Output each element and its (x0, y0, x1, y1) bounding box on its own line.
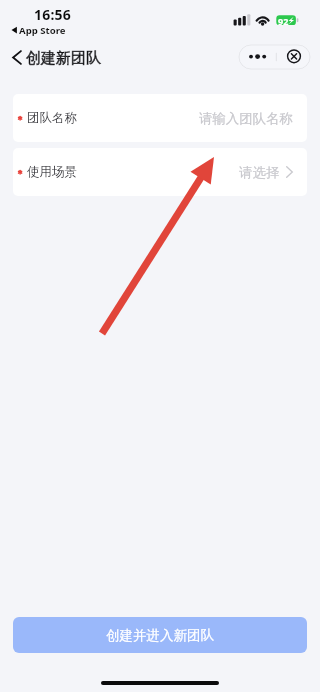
button[interactable]: 创建并进入新团队 (13, 617, 307, 653)
button[interactable]: 使用场景 (13, 148, 307, 196)
staticText: 使用场景 (27, 164, 77, 180)
staticText: 请输入团队名称 (199, 110, 293, 127)
staticText: 团队名称 (27, 110, 77, 126)
staticText: App Store (19, 24, 66, 37)
button[interactable]: 更多 (239, 45, 276, 69)
button[interactable]: 关闭 (276, 45, 310, 69)
staticText: 创建新团队 (26, 49, 101, 68)
staticText: 创建并进入新团队 (106, 627, 214, 644)
staticText: 92 (278, 15, 289, 27)
button[interactable]: 返回 (4, 45, 30, 69)
staticText: 创建新团队 (26, 49, 101, 68)
staticText: 16:56 (34, 5, 71, 24)
staticText: 请选择 (239, 164, 280, 181)
button[interactable]: 团队名称 (13, 94, 307, 142)
